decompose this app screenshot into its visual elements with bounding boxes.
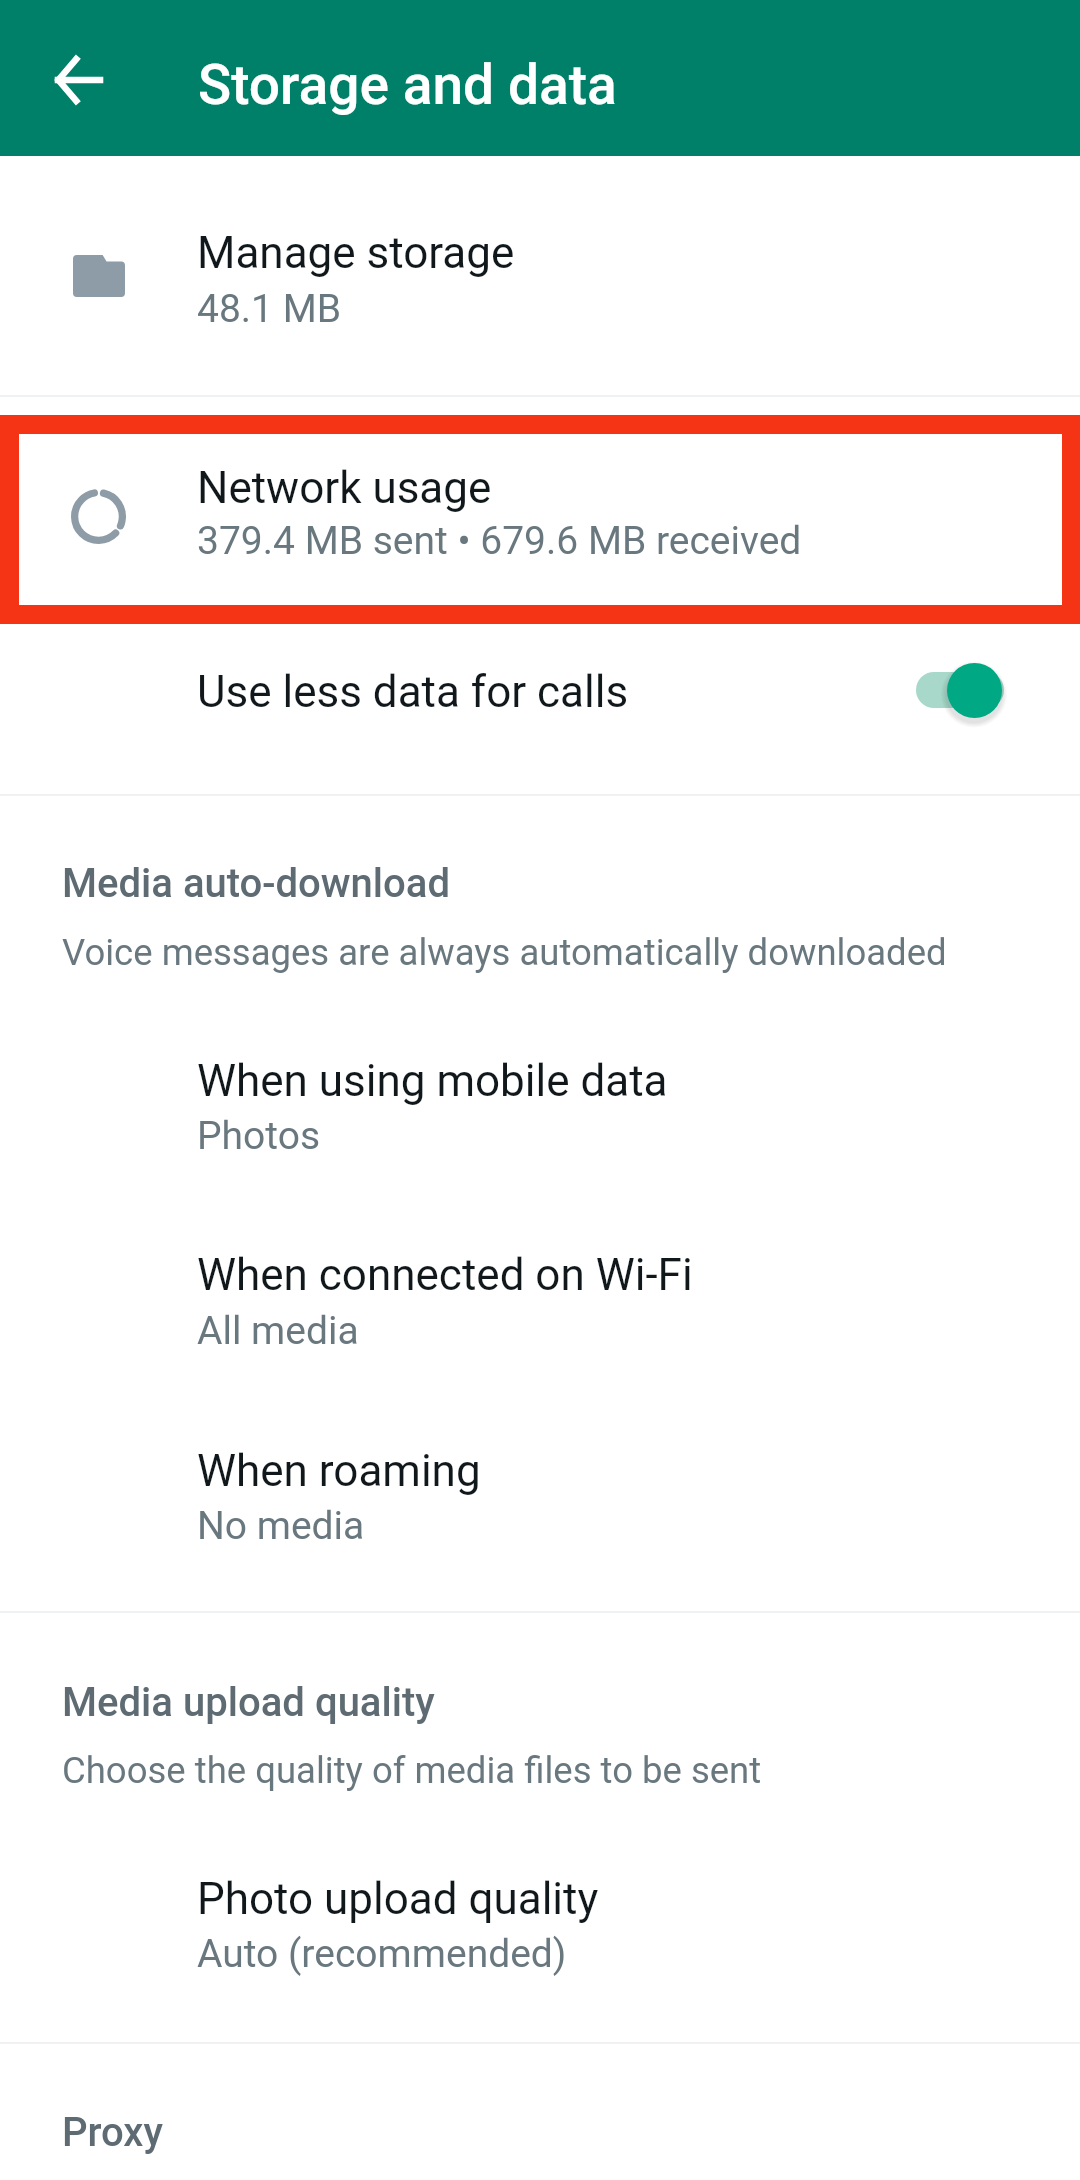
button[interactable]: Manage storage <box>0 156 1080 395</box>
staticText: All media <box>197 1308 359 1354</box>
button[interactable]: Photo upload quality <box>0 1818 1080 2014</box>
staticText: Photo upload quality <box>197 1873 599 1925</box>
staticText: Media upload quality <box>62 1679 435 1726</box>
staticText: Storage and data <box>198 53 617 117</box>
staticText: Use less data for calls <box>197 666 629 718</box>
staticText: 379.4 MB sent • 679.6 MB received <box>197 518 802 564</box>
button[interactable]: When roaming <box>0 1392 1080 1588</box>
staticText: No media <box>197 1503 365 1549</box>
button[interactable]: Network usage <box>19 434 1062 605</box>
staticText: Network usage <box>197 462 492 514</box>
staticText: Manage storage <box>197 227 515 279</box>
staticText: Choose the quality of media files to be … <box>62 1749 762 1792</box>
staticText: Voice messages are always automatically … <box>62 931 947 974</box>
staticText: When connected on Wi-Fi <box>197 1249 693 1301</box>
staticText: Media auto-download <box>62 860 451 907</box>
button[interactable]: When connected on Wi-Fi <box>0 1196 1080 1392</box>
staticText: 48.1 MB <box>197 286 342 332</box>
button[interactable]: Back <box>30 31 128 129</box>
staticText: Proxy <box>62 2109 163 2156</box>
staticText: Auto (recommended) <box>197 1931 567 1977</box>
button[interactable]: When using mobile data <box>0 1000 1080 1196</box>
button[interactable]: Use less data for calls <box>0 624 1080 794</box>
staticText: When roaming <box>197 1445 481 1497</box>
staticText: When using mobile data <box>197 1055 668 1107</box>
button[interactable]: Use less data for calls <box>906 661 1018 719</box>
staticText: Photos <box>197 1113 321 1159</box>
